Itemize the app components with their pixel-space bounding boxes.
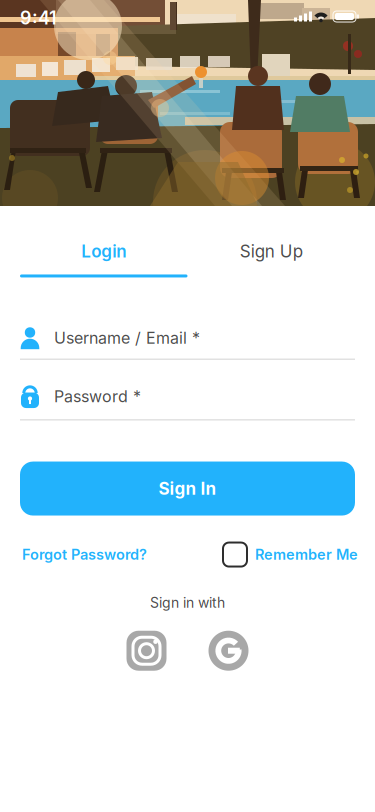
- button[interactable]: Remember Me: [223, 543, 358, 567]
- button[interactable]: [208, 631, 248, 671]
- button[interactable]: Password *: [20, 385, 355, 420]
- staticText: Sign Up: [240, 239, 303, 263]
- button[interactable]: Sign Up: [187, 239, 355, 277]
- staticText: Remember Me: [255, 544, 358, 565]
- button[interactable]: Login: [20, 239, 187, 277]
- staticText: Username / Email *: [54, 326, 200, 349]
- button[interactable]: Username / Email *: [20, 326, 355, 360]
- staticText: Login: [81, 239, 126, 263]
- button[interactable]: Forgot Password?: [22, 544, 147, 565]
- staticText: Password *: [54, 385, 141, 408]
- staticText: Forgot Password?: [22, 544, 147, 565]
- staticText: 9:41: [20, 5, 57, 31]
- staticText: Sign in with: [150, 593, 225, 613]
- button[interactable]: Sign In: [20, 462, 355, 516]
- button[interactable]: [126, 631, 166, 671]
- staticText: Sign In: [158, 476, 216, 501]
